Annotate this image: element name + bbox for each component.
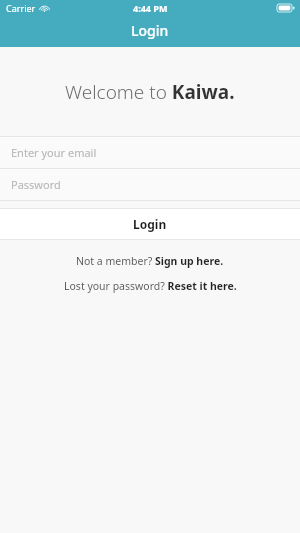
button[interactable]: Login xyxy=(0,209,300,239)
staticText: 4:44 PM xyxy=(133,2,168,14)
staticText: Lost your password? Reset it here. xyxy=(64,279,237,293)
staticText: Login xyxy=(131,21,169,40)
staticText: Password xyxy=(11,177,61,192)
staticText: Welcome to Kaiwa. xyxy=(65,79,235,105)
button[interactable]: Enter your email xyxy=(0,137,300,168)
button[interactable]: Not a member? Sign up here. xyxy=(0,253,300,268)
staticText: Enter your email xyxy=(11,145,97,160)
staticText: Carrier xyxy=(6,2,36,14)
button[interactable]: Lost your password? Reset it here. xyxy=(0,278,300,293)
staticText: Not a member? Sign up here. xyxy=(76,254,224,268)
button[interactable]: Password xyxy=(0,169,300,200)
staticText: Login xyxy=(133,216,167,232)
